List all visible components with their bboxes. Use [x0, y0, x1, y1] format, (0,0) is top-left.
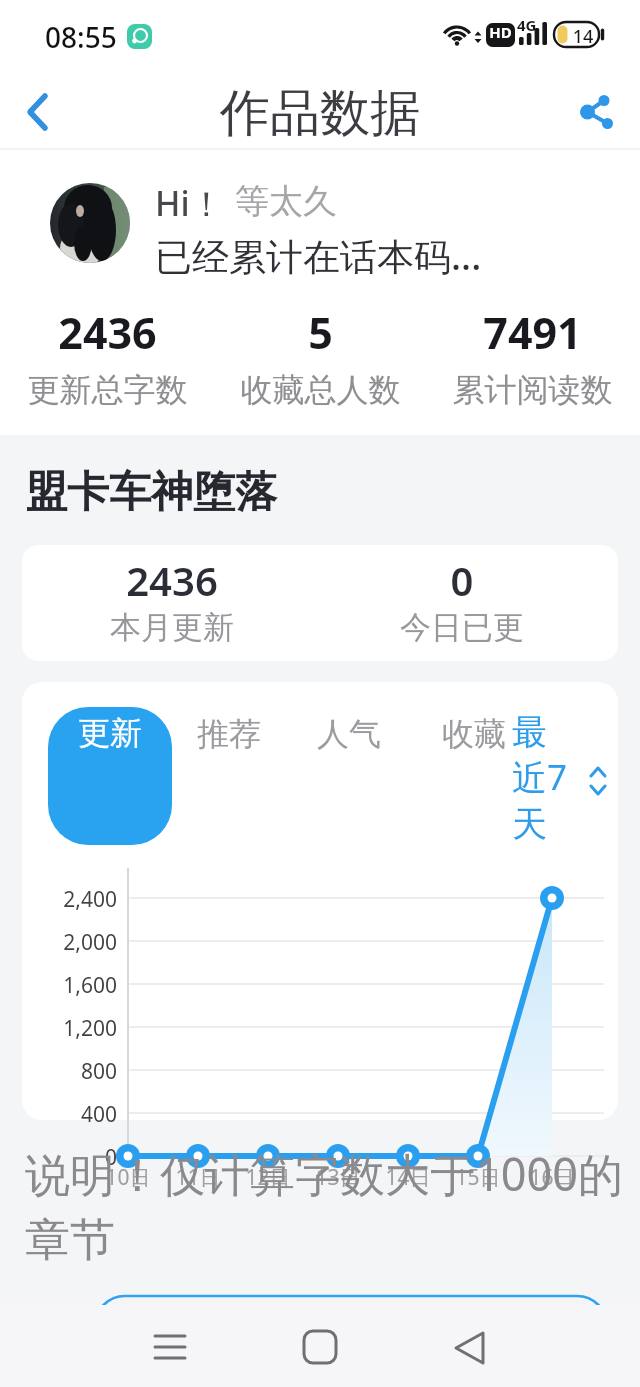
staticText: 收藏总人数: [228, 370, 413, 410]
button[interactable]: [568, 86, 624, 138]
button[interactable]: [50, 183, 130, 263]
button[interactable]: [130, 1310, 210, 1382]
button[interactable]: [280, 1310, 360, 1382]
button[interactable]: [317, 707, 381, 757]
staticText: 推荐: [197, 714, 261, 754]
staticText: 累计阅读数: [440, 370, 625, 410]
staticText: 14日: [377, 1163, 439, 1192]
staticText: 12日: [237, 1163, 299, 1192]
staticText: 更新总字数: [15, 370, 200, 410]
staticText: 15日: [447, 1163, 509, 1192]
button[interactable]: [432, 1310, 512, 1382]
staticText: 2,400: [0, 885, 117, 914]
staticText: 0: [0, 1143, 117, 1172]
staticText: 2436: [22, 553, 322, 607]
button[interactable]: [440, 707, 508, 757]
staticText: 盟卡车神堕落: [25, 466, 277, 519]
staticText: 0: [322, 553, 602, 607]
staticText: 5: [228, 303, 413, 362]
staticText: 08:55: [45, 18, 117, 56]
staticText: 作品数据: [0, 82, 640, 145]
staticText: Hi！: [155, 180, 224, 226]
staticText: 400: [0, 1100, 117, 1129]
staticText: 等太久: [235, 180, 337, 223]
button[interactable]: 更新: [48, 707, 172, 845]
staticText: 收藏: [440, 714, 508, 754]
staticText: HD: [486, 22, 515, 42]
staticText: 14: [566, 24, 600, 49]
staticText: 更新: [78, 713, 142, 753]
button[interactable]: [197, 707, 261, 757]
staticText: 本月更新: [22, 608, 322, 647]
staticText: 说明！仅计算字数大于1000的章节: [25, 1143, 625, 1268]
staticText: 11日: [167, 1163, 229, 1192]
staticText: 2,000: [0, 928, 117, 957]
staticText: 16日: [521, 1163, 583, 1192]
staticText: 今日已更: [322, 608, 602, 647]
staticText: 10日: [97, 1163, 159, 1192]
button[interactable]: 最近7天: [512, 710, 570, 846]
staticText: 1,200: [0, 1014, 117, 1043]
staticText: 7491: [440, 303, 625, 362]
staticText: 最近7天: [512, 710, 570, 846]
staticText: 人气: [317, 714, 381, 754]
staticText: 800: [0, 1057, 117, 1086]
staticText: 1,600: [0, 971, 117, 1000]
staticText: 13日: [307, 1163, 369, 1192]
staticText: 4G: [517, 15, 537, 35]
button[interactable]: [22, 545, 618, 661]
staticText: 2436: [15, 303, 200, 362]
staticText: 已经累计在话本码...: [155, 230, 482, 281]
button[interactable]: [12, 86, 64, 138]
